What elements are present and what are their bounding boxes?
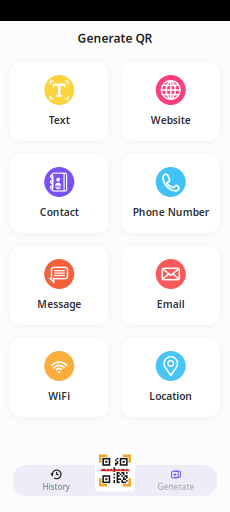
staticText: Location: [149, 389, 192, 403]
button[interactable]: WiFi: [10, 338, 108, 417]
button[interactable]: Message: [10, 246, 108, 325]
button[interactable]: History: [28, 465, 84, 496]
staticText: Email: [157, 297, 185, 311]
button[interactable]: Text: [10, 62, 108, 141]
button[interactable]: Location: [121, 338, 220, 417]
button[interactable]: Phone Number: [121, 154, 220, 233]
staticText: Generate: [157, 481, 194, 492]
staticText: Text: [49, 113, 70, 127]
staticText: Website: [151, 113, 191, 127]
staticText: History: [42, 481, 69, 492]
button[interactable]: Website: [121, 62, 220, 141]
staticText: Generate QR: [77, 30, 152, 46]
button[interactable]: Email: [121, 246, 220, 325]
staticText: Message: [37, 297, 81, 311]
staticText: Contact: [40, 205, 79, 219]
staticText: Phone Number: [133, 205, 209, 219]
staticText: WiFi: [48, 389, 70, 403]
button[interactable]: Contact: [10, 154, 108, 233]
button[interactable]: Generate: [148, 465, 204, 496]
button[interactable]: Scan QR code: [95, 449, 135, 491]
